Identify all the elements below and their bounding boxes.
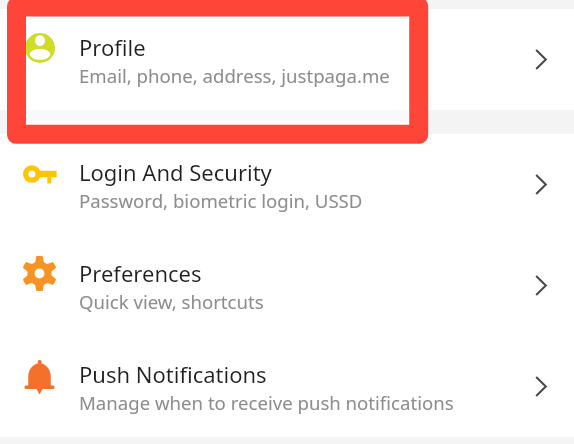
- other: Preferences: [510, 235, 574, 336]
- staticText: Login And Security: [79, 157, 272, 187]
- button[interactable]: Push Notifications: [0, 336, 574, 437]
- staticText: Profile: [79, 32, 146, 62]
- button[interactable]: Profile: [0, 9, 574, 110]
- staticText: Email, phone, address, justpaga.me: [79, 63, 390, 88]
- other: Login And Security: [510, 134, 574, 235]
- staticText: Password, biometric login, USSD: [79, 188, 363, 213]
- staticText: Manage when to receive push notification…: [79, 390, 454, 415]
- staticText: Quick view, shortcuts: [79, 289, 264, 314]
- staticText: Preferences: [79, 258, 202, 288]
- other: Push Notifications: [510, 336, 574, 437]
- button[interactable]: Login And Security: [0, 134, 574, 235]
- staticText: Push Notifications: [79, 359, 267, 389]
- button[interactable]: Preferences: [0, 235, 574, 336]
- other: Profile: [510, 9, 574, 110]
